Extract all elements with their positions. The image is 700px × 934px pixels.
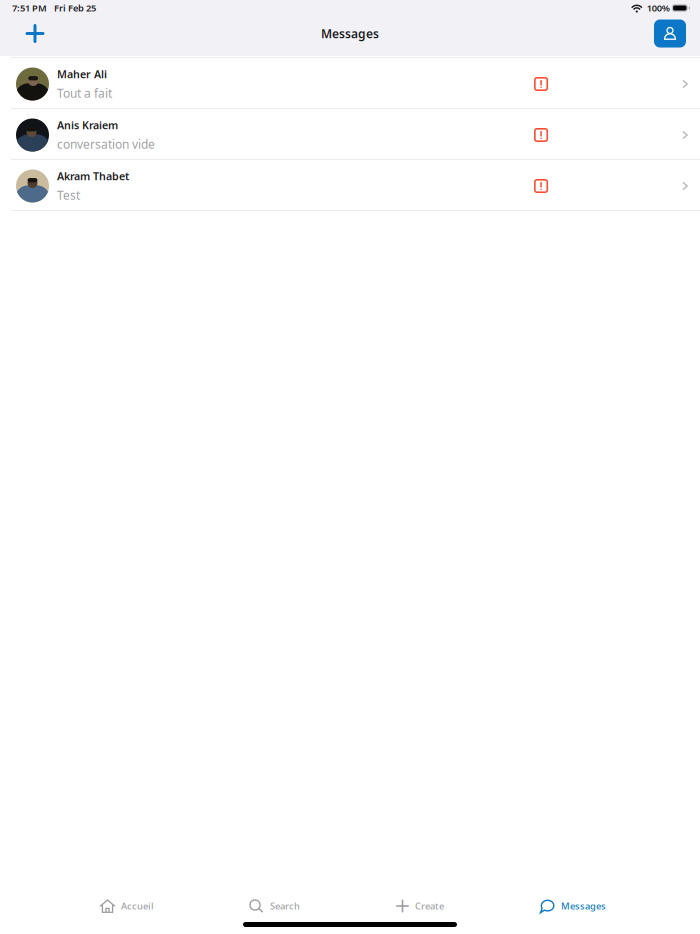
staticText: Test bbox=[57, 187, 80, 203]
staticText: 100% bbox=[647, 2, 670, 14]
staticText: Create bbox=[415, 900, 444, 912]
button[interactable]: Search bbox=[242, 895, 308, 917]
staticText: Messages bbox=[561, 900, 606, 912]
staticText: Fri Feb 25 bbox=[54, 2, 96, 14]
staticText: Search bbox=[270, 900, 300, 912]
button[interactable]: Create bbox=[388, 895, 452, 917]
staticText: Tout a fait bbox=[57, 85, 112, 101]
staticText: Akram Thabet bbox=[57, 169, 129, 183]
button[interactable]: Messages bbox=[532, 895, 614, 917]
button[interactable]: New message bbox=[17, 16, 53, 51]
button[interactable]: Accueil bbox=[92, 895, 162, 917]
staticText: Anis Kraiem bbox=[57, 118, 118, 132]
button[interactable]: Anis Kraiem bbox=[0, 109, 700, 159]
button[interactable]: Account bbox=[654, 19, 686, 47]
button[interactable]: Akram Thabet bbox=[0, 160, 700, 210]
staticText: conversation vide bbox=[57, 136, 155, 152]
button[interactable]: Maher Ali bbox=[0, 58, 700, 108]
staticText: 7:51 PM bbox=[12, 2, 47, 14]
staticText: Accueil bbox=[121, 900, 154, 912]
staticText: Messages bbox=[321, 25, 379, 41]
staticText: Maher Ali bbox=[57, 67, 107, 81]
